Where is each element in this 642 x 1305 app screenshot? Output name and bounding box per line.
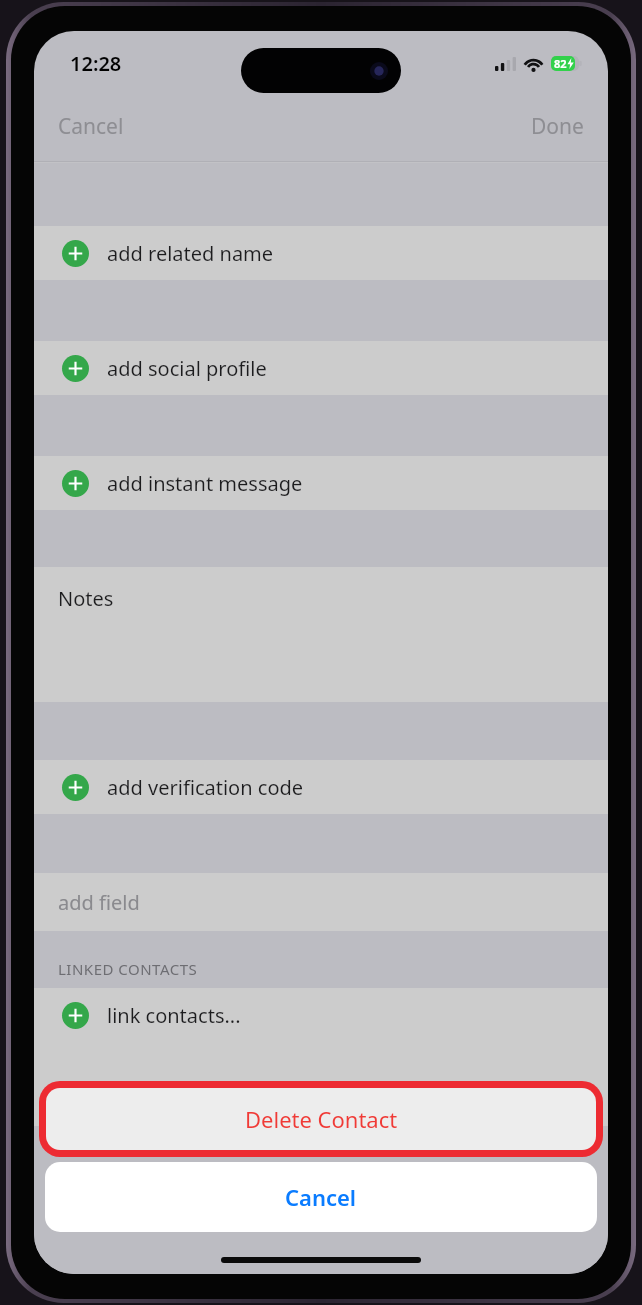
- button[interactable]: Add: [34, 988, 608, 1042]
- staticText: 82: [554, 56, 567, 71]
- staticText: add field: [58, 889, 140, 916]
- other: Add: [62, 355, 89, 382]
- staticText: link contacts...: [107, 1002, 241, 1029]
- staticText: add related name: [107, 240, 274, 267]
- other: Add: [62, 774, 89, 801]
- staticText: add verification code: [107, 774, 304, 801]
- other: Add: [62, 1002, 89, 1029]
- other: Add: [62, 240, 89, 267]
- button[interactable]: Done: [507, 101, 608, 152]
- staticText: add social profile: [107, 355, 267, 382]
- staticText: Notes: [58, 585, 114, 612]
- button[interactable]: Cancel: [45, 1162, 597, 1232]
- button[interactable]: Delete Contact: [34, 1054, 608, 1126]
- button[interactable]: Add: [34, 456, 608, 510]
- staticText: add instant message: [107, 470, 303, 497]
- staticText: Delete Contact: [248, 1076, 394, 1105]
- button[interactable]: Cancel: [34, 101, 148, 152]
- button[interactable]: Notes: [34, 567, 608, 702]
- button[interactable]: Add: [34, 226, 608, 280]
- other: Add: [62, 470, 89, 497]
- button[interactable]: Add: [34, 760, 608, 814]
- staticText: Cancel: [285, 1182, 357, 1212]
- staticText: Done: [531, 112, 584, 141]
- staticText: 12:28: [70, 50, 122, 77]
- button[interactable]: Delete Contact: [46, 1088, 596, 1150]
- staticText: LINKED CONTACTS: [58, 959, 198, 979]
- staticText: Cancel: [58, 112, 124, 141]
- staticText: Delete Contact: [245, 1104, 398, 1134]
- button[interactable]: Add: [34, 341, 608, 395]
- button[interactable]: add field: [34, 873, 608, 931]
